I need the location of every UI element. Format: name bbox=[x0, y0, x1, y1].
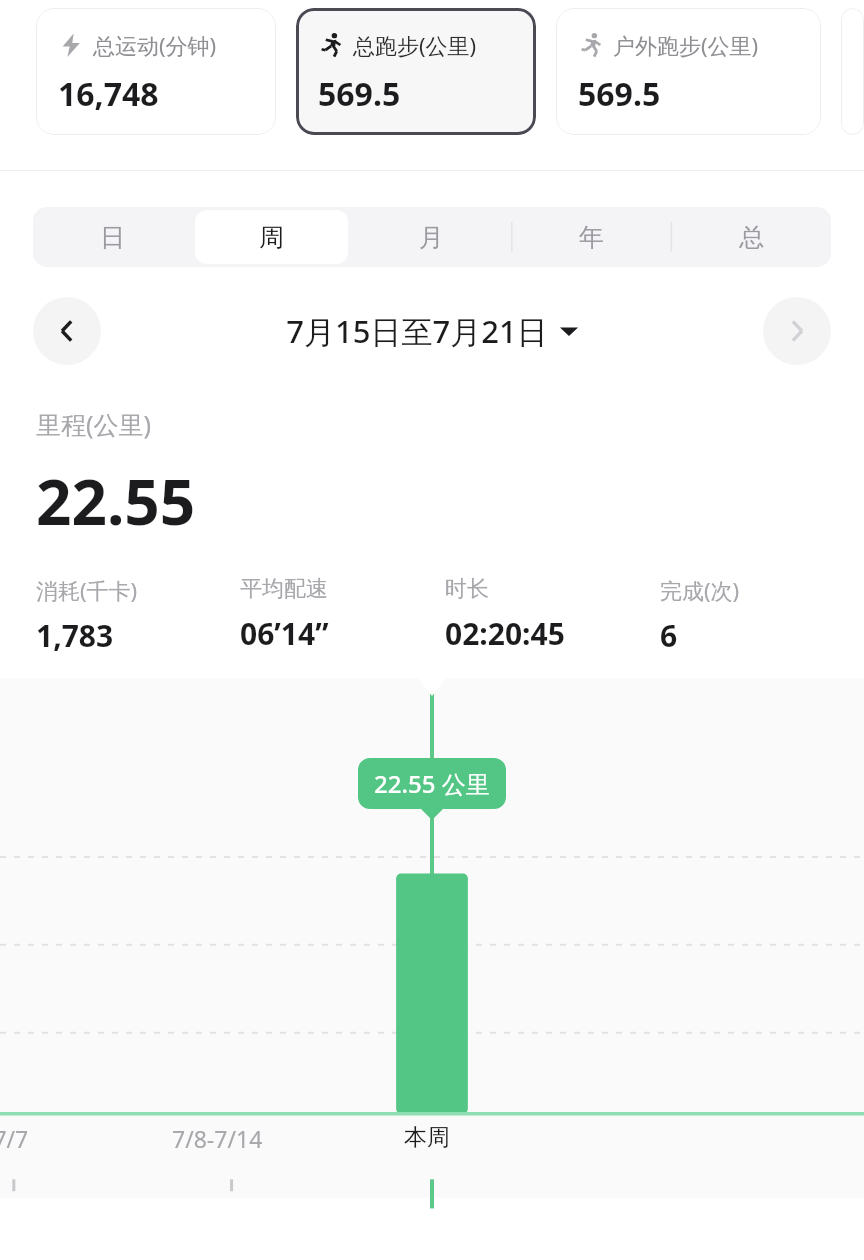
button[interactable]: 总 bbox=[674, 210, 828, 264]
staticText: -7/7 bbox=[0, 1123, 29, 1154]
button[interactable] bbox=[841, 8, 864, 135]
staticText: 7月15日至7月21日 bbox=[286, 310, 548, 352]
staticText: 户外跑步(公里) bbox=[613, 30, 759, 60]
staticText: 569.5 bbox=[318, 72, 401, 116]
staticText: 月 bbox=[419, 222, 444, 253]
staticText: 6 bbox=[660, 615, 678, 656]
button[interactable]: 户外跑步(公里) bbox=[556, 8, 821, 135]
staticText: 569.5 bbox=[578, 72, 661, 116]
staticText: 本周 bbox=[404, 1123, 450, 1152]
staticText: 消耗(千卡) bbox=[36, 575, 138, 605]
staticText: 02:20:45 bbox=[445, 613, 565, 654]
staticText: 里程(公里) bbox=[36, 407, 152, 441]
staticText: 日 bbox=[100, 222, 125, 253]
button[interactable]: 22.55 公里 bbox=[358, 758, 506, 809]
button[interactable]: Next week bbox=[763, 297, 831, 365]
staticText: 06’14” bbox=[240, 613, 329, 654]
staticText: 16,748 bbox=[58, 72, 159, 116]
button[interactable]: 周 bbox=[195, 210, 348, 264]
staticText: 年 bbox=[579, 222, 604, 253]
button[interactable]: 日 bbox=[36, 210, 189, 264]
button[interactable]: 年 bbox=[514, 210, 668, 264]
staticText: 周 bbox=[259, 222, 284, 253]
button[interactable]: 总跑步(公里) bbox=[296, 8, 536, 135]
button[interactable]: 7月15日至7月21日 bbox=[286, 310, 578, 352]
staticText: 7/8-7/14 bbox=[172, 1123, 263, 1154]
button[interactable]: Previous week bbox=[33, 297, 101, 365]
staticText: 22.55 公里 bbox=[374, 767, 490, 800]
staticText: 总 bbox=[739, 222, 764, 253]
staticText: 总运动(分钟) bbox=[93, 30, 217, 60]
staticText: 总跑步(公里) bbox=[353, 30, 477, 60]
staticText: 1,783 bbox=[36, 615, 114, 656]
button[interactable]: 月 bbox=[354, 210, 508, 264]
button[interactable]: 总运动(分钟) bbox=[36, 8, 276, 135]
staticText: 时长 bbox=[445, 575, 489, 603]
staticText: 完成(次) bbox=[660, 575, 740, 605]
staticText: 平均配速 bbox=[240, 575, 328, 603]
staticText: 22.55 bbox=[36, 459, 196, 543]
